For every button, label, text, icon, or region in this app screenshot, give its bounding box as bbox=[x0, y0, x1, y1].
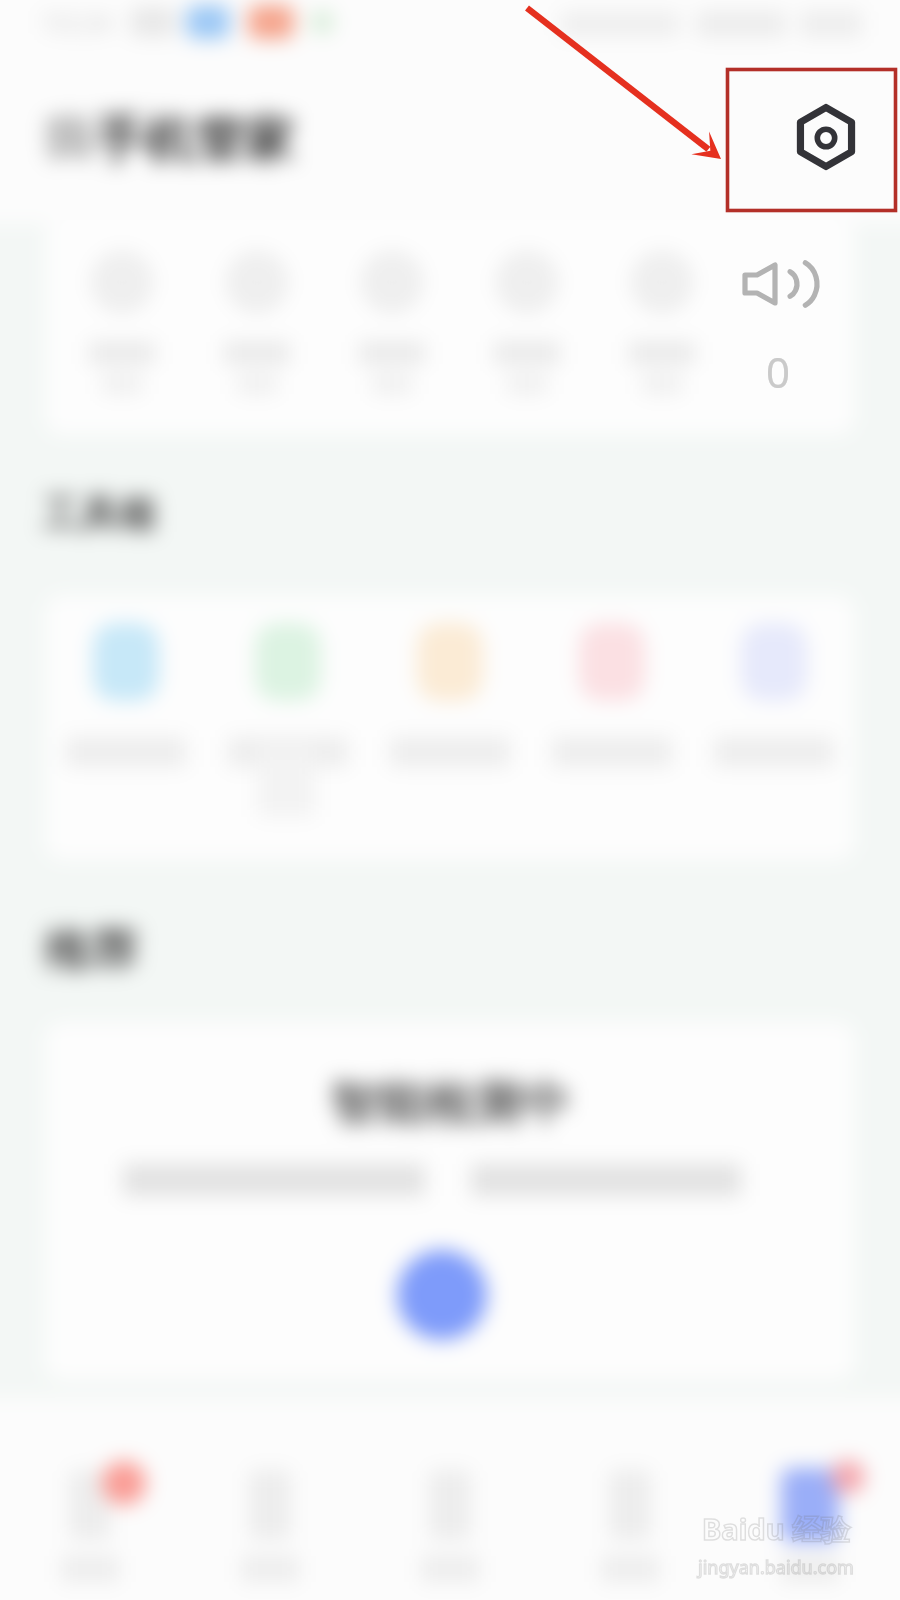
staticText: 我 bbox=[44, 111, 90, 169]
button[interactable] bbox=[450, 220, 585, 394]
button[interactable] bbox=[180, 220, 315, 394]
button[interactable] bbox=[180, 1398, 360, 1582]
button[interactable] bbox=[369, 595, 531, 767]
button[interactable] bbox=[720, 1398, 900, 1582]
button[interactable] bbox=[45, 220, 180, 394]
button[interactable] bbox=[0, 1398, 180, 1582]
button[interactable] bbox=[693, 595, 855, 767]
button[interactable] bbox=[45, 595, 207, 767]
staticText: 工具箱 bbox=[42, 490, 156, 538]
button[interactable] bbox=[585, 220, 720, 394]
button[interactable] bbox=[360, 1398, 540, 1582]
button[interactable]: Volume bbox=[725, 250, 833, 390]
staticText: 智能检测中 bbox=[330, 1074, 570, 1134]
button[interactable] bbox=[531, 595, 693, 767]
button[interactable]: Settings bbox=[786, 97, 866, 177]
staticText: jingyan.baidu.com bbox=[698, 1555, 854, 1580]
staticText: 0 bbox=[766, 343, 791, 400]
button[interactable] bbox=[397, 1250, 487, 1340]
button[interactable] bbox=[540, 1398, 720, 1582]
button[interactable] bbox=[315, 220, 450, 394]
staticText: 推荐 bbox=[42, 922, 138, 970]
button[interactable] bbox=[207, 595, 369, 767]
staticText: Baidu 经验 bbox=[702, 1509, 851, 1549]
staticText: 手机管家 bbox=[94, 109, 294, 172]
